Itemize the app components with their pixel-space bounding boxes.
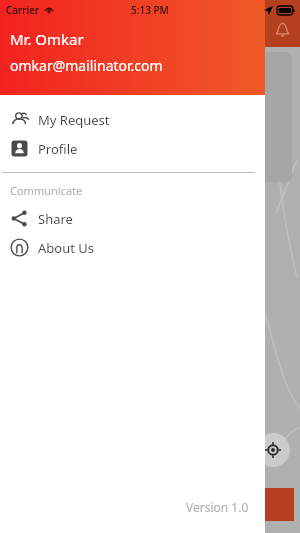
button[interactable]: Share: [0, 204, 265, 233]
staticText: Share: [38, 210, 73, 228]
button[interactable]: Profile: [0, 134, 265, 163]
staticText: Mr. Omkar: [10, 29, 84, 49]
staticText: Profile: [38, 140, 78, 158]
button[interactable]: About Us: [0, 233, 265, 262]
staticText: 5:13 PM: [131, 3, 169, 17]
button[interactable]: My location: [256, 433, 290, 467]
staticText: omkar@mailinator.com: [10, 56, 163, 75]
staticText: Carrier: [6, 3, 40, 17]
button[interactable]: My Request: [0, 105, 265, 134]
staticText: Version 1.0: [186, 499, 249, 515]
button[interactable]: Notifications: [264, 11, 300, 47]
staticText: Communicate: [10, 183, 83, 198]
button[interactable]: [204, 488, 294, 521]
staticText: My Request: [38, 111, 110, 129]
staticText: About Us: [38, 239, 95, 257]
